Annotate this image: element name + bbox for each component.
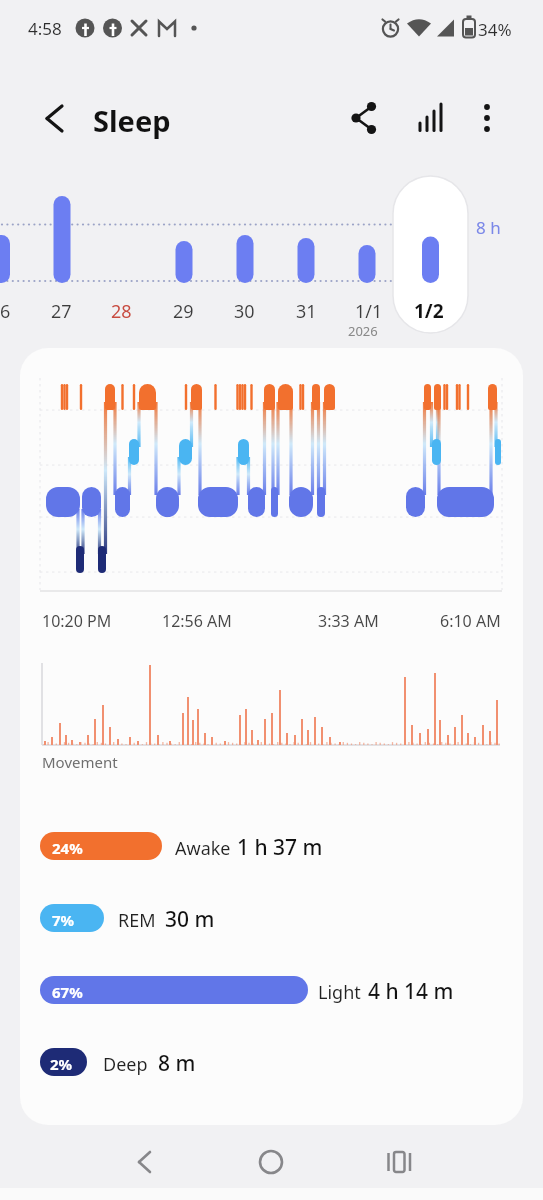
staticText: 6 <box>0 299 11 324</box>
button[interactable] <box>110 1140 174 1184</box>
staticText: Deep <box>103 1052 148 1077</box>
button[interactable] <box>40 826 340 866</box>
staticText: 10:20 PM <box>42 610 112 632</box>
staticText: 34% <box>478 18 512 41</box>
button[interactable] <box>40 1042 220 1082</box>
staticText: 1 h 37 m <box>237 833 323 862</box>
staticText: 24% <box>52 838 83 858</box>
staticText: 2% <box>50 1054 73 1074</box>
button[interactable] <box>410 100 450 136</box>
button[interactable] <box>393 176 468 333</box>
button[interactable] <box>344 100 384 136</box>
button[interactable] <box>34 103 74 135</box>
staticText: 2026 <box>348 322 378 340</box>
button[interactable] <box>239 1140 303 1184</box>
staticText: 27 <box>51 299 72 324</box>
button[interactable] <box>470 100 504 136</box>
staticText: REM <box>118 908 156 933</box>
staticText: 3:33 AM <box>318 610 379 632</box>
staticText: 31 <box>296 299 317 324</box>
staticText: 28 <box>111 299 132 324</box>
button[interactable] <box>40 970 470 1010</box>
staticText: 8 m <box>158 1049 196 1078</box>
staticText: Movement <box>42 752 118 772</box>
staticText: 67% <box>52 982 83 1002</box>
button[interactable] <box>40 898 240 938</box>
staticText: 6:10 AM <box>440 610 501 632</box>
staticText: 12:56 AM <box>162 610 232 632</box>
staticText: 7% <box>52 910 75 930</box>
staticText: Awake <box>175 836 231 861</box>
staticText: 8 h <box>476 216 501 239</box>
staticText: 1/1 <box>355 299 383 324</box>
staticText: 29 <box>173 299 194 324</box>
staticText: 1/2 <box>414 298 444 324</box>
staticText: 4:58 <box>28 17 62 40</box>
staticText: 30 m <box>165 905 215 934</box>
staticText: Sleep <box>93 101 171 140</box>
staticText: Light <box>318 980 361 1005</box>
button[interactable] <box>366 1140 430 1184</box>
staticText: 30 <box>234 299 255 324</box>
staticText: 4 h 14 m <box>368 977 454 1006</box>
